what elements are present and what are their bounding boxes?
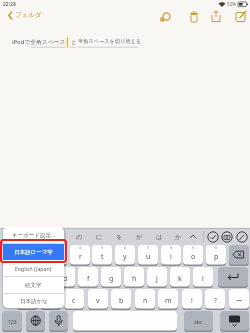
button[interactable]: g bbox=[101, 267, 121, 288]
button[interactable]: 9 bbox=[183, 245, 203, 266]
staticText: n bbox=[143, 296, 148, 306]
button[interactable]: f bbox=[78, 267, 98, 288]
button[interactable]: English (Japan) bbox=[3, 260, 64, 276]
staticText: キーボード設定... bbox=[12, 231, 56, 239]
button[interactable]: 4 bbox=[70, 245, 90, 266]
button[interactable]: a bbox=[9, 267, 29, 288]
button[interactable]: を bbox=[111, 229, 127, 244]
button[interactable]: k bbox=[170, 267, 190, 288]
staticText: w bbox=[31, 252, 37, 262]
button[interactable]: ? bbox=[205, 289, 225, 310]
button[interactable] bbox=[159, 11, 172, 23]
staticText: と bbox=[71, 38, 77, 45]
button[interactable]: 123 bbox=[2, 311, 22, 332]
button[interactable]: が bbox=[131, 229, 147, 244]
staticText: ! bbox=[191, 296, 193, 305]
staticText: c bbox=[72, 296, 76, 306]
button[interactable]: n bbox=[135, 289, 155, 310]
staticText: t bbox=[101, 252, 104, 262]
button[interactable]: 1 bbox=[2, 245, 22, 266]
staticText: の bbox=[76, 233, 83, 241]
button[interactable]: ー bbox=[229, 289, 249, 310]
button[interactable] bbox=[188, 11, 200, 23]
staticText: o bbox=[191, 252, 196, 262]
button[interactable] bbox=[206, 230, 220, 244]
button[interactable]: フォルダ bbox=[6, 10, 48, 22]
button[interactable] bbox=[229, 245, 249, 266]
staticText: h bbox=[132, 274, 137, 284]
button[interactable]: 0 bbox=[206, 245, 226, 266]
staticText: 5 bbox=[101, 245, 104, 250]
staticText: 日本語かな bbox=[20, 298, 48, 305]
button[interactable] bbox=[73, 311, 177, 332]
staticText: iPodで全角スペース bbox=[12, 38, 66, 46]
staticText: a bbox=[17, 274, 21, 284]
button[interactable]: j bbox=[147, 267, 167, 288]
staticText: 絵文字 bbox=[25, 282, 42, 289]
staticText: v bbox=[96, 296, 100, 306]
button[interactable] bbox=[187, 229, 199, 244]
button[interactable] bbox=[235, 10, 248, 23]
staticText: r bbox=[79, 252, 82, 262]
button[interactable]: abc bbox=[184, 311, 213, 332]
staticText: 123 bbox=[8, 319, 17, 326]
button[interactable]: c bbox=[64, 289, 84, 310]
button[interactable] bbox=[220, 311, 249, 332]
button[interactable]: は bbox=[151, 229, 167, 244]
button[interactable]: h bbox=[124, 267, 144, 288]
staticText: b bbox=[119, 296, 124, 306]
staticText: ? bbox=[214, 296, 217, 305]
staticText: j bbox=[156, 274, 158, 284]
button[interactable]: キーボード設定... bbox=[3, 227, 64, 243]
staticText: 4 bbox=[79, 245, 82, 250]
staticText: abc bbox=[194, 319, 203, 326]
staticText: 7 bbox=[147, 245, 150, 250]
button[interactable]: v bbox=[88, 289, 108, 310]
button[interactable]: 8 bbox=[161, 245, 181, 266]
button[interactable] bbox=[218, 267, 248, 288]
staticText: 8 bbox=[170, 245, 173, 250]
button[interactable]: 日本語ローマ字 bbox=[3, 244, 64, 260]
staticText: e bbox=[55, 252, 59, 262]
button[interactable] bbox=[26, 311, 45, 332]
staticText: 日本語ローマ字 bbox=[14, 249, 53, 256]
staticText: を bbox=[116, 233, 123, 241]
staticText: s bbox=[40, 274, 44, 284]
button[interactable] bbox=[49, 311, 68, 332]
button[interactable] bbox=[235, 230, 249, 244]
button[interactable]: z bbox=[17, 289, 37, 310]
button[interactable]: の bbox=[71, 229, 87, 244]
staticText: f bbox=[87, 274, 90, 284]
staticText: y bbox=[123, 252, 127, 262]
staticText: English (Japan) bbox=[15, 265, 52, 272]
staticText: 半角スペースを切り替える bbox=[78, 38, 142, 45]
button[interactable]: b bbox=[111, 289, 131, 310]
button[interactable]: 2 bbox=[24, 245, 44, 266]
button[interactable] bbox=[220, 230, 234, 244]
button[interactable]: x bbox=[41, 289, 61, 310]
staticText: m bbox=[165, 296, 172, 306]
button[interactable]: 3 bbox=[47, 245, 67, 266]
staticText: 22:28 bbox=[3, 1, 16, 8]
staticText: に bbox=[96, 233, 103, 241]
staticText: ー bbox=[236, 297, 243, 305]
button[interactable]: 絵文字 bbox=[3, 277, 64, 293]
staticText: q bbox=[10, 252, 15, 262]
staticText: d bbox=[63, 274, 68, 284]
button[interactable]: d bbox=[55, 267, 75, 288]
button[interactable]: 日本語かな bbox=[3, 294, 64, 308]
staticText: i bbox=[170, 252, 172, 262]
button[interactable] bbox=[210, 10, 222, 23]
button[interactable]: l bbox=[193, 267, 213, 288]
button[interactable]: ! bbox=[182, 289, 202, 310]
button[interactable]: 7 bbox=[138, 245, 158, 266]
button[interactable]: 6 bbox=[115, 245, 135, 266]
button[interactable]: か bbox=[170, 229, 186, 244]
button[interactable]: に bbox=[91, 229, 107, 244]
staticText: か bbox=[175, 233, 182, 241]
button[interactable]: 5 bbox=[92, 245, 112, 266]
button[interactable]: s bbox=[32, 267, 52, 288]
button[interactable]: m bbox=[158, 289, 178, 310]
